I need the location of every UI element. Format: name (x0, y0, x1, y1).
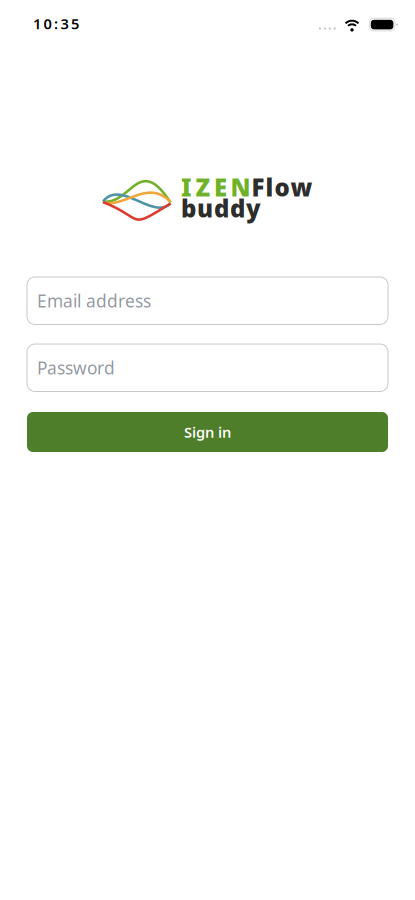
staticText: Email address (37, 289, 151, 312)
button[interactable]: Sign in (27, 412, 388, 452)
staticText: Flow (251, 171, 319, 203)
button[interactable]: Email address (27, 277, 388, 324)
staticText: 10:35 (33, 14, 85, 33)
staticText: Password (37, 356, 115, 379)
staticText: buddy (181, 192, 268, 224)
button[interactable]: Password (27, 344, 388, 391)
staticText: IZEN (181, 171, 260, 203)
staticText: Sign in (184, 422, 231, 442)
